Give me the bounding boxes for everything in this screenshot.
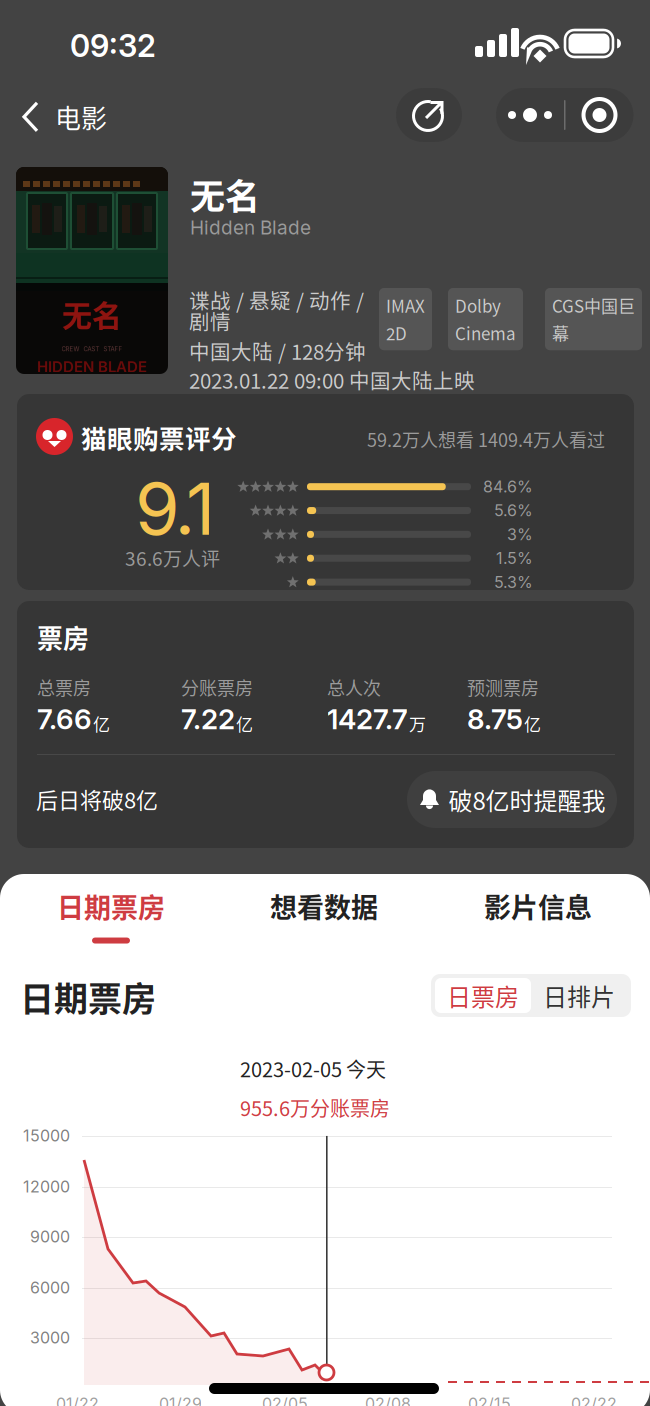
staticText: 破8亿时提醒我: [448, 782, 605, 817]
staticText: 剧情: [189, 306, 231, 336]
staticText: 中国大陆 / 128分钟: [189, 336, 366, 366]
staticText: 总票房: [37, 674, 91, 700]
staticText: 02/05: [262, 1394, 308, 1406]
staticText: 幕: [552, 321, 569, 345]
staticText: 分账票房: [181, 674, 253, 700]
staticText: 59.2万人想看 1409.4万人看过: [367, 426, 605, 452]
staticText: 9.1: [135, 465, 215, 552]
staticText: 02/15: [468, 1394, 511, 1406]
staticText: 01/22: [56, 1394, 99, 1406]
staticText: 3%: [507, 525, 533, 544]
staticText: 6000: [30, 1278, 70, 1297]
staticText: IMAX: [386, 293, 425, 318]
button[interactable]: 日期票房: [3, 883, 219, 947]
staticText: HIDDEN BLADE: [37, 358, 147, 376]
staticText: 02/08: [365, 1394, 411, 1406]
button[interactable]: 电影: [7, 84, 121, 150]
staticText: 02/22: [571, 1394, 617, 1406]
staticText: 亿: [524, 711, 541, 736]
staticText: 猫眼购票评分: [81, 419, 237, 456]
staticText: 2D: [386, 321, 407, 345]
staticText: Cinema: [455, 321, 516, 345]
staticText: 日期票房: [57, 886, 165, 926]
staticText: 影片信息: [484, 886, 592, 926]
staticText: 9000: [30, 1227, 70, 1246]
staticText: 15000: [23, 1126, 70, 1145]
staticText: 票房: [37, 618, 89, 656]
staticText: CGS中国巨: [552, 293, 635, 318]
staticText: Hidden Blade: [190, 216, 311, 239]
staticText: 3000: [30, 1328, 70, 1347]
staticText: 总人次: [327, 674, 381, 700]
button[interactable]: 破8亿时提醒我: [407, 771, 617, 828]
staticText: 955.6万分账票房: [240, 1093, 390, 1122]
staticText: 01/29: [159, 1394, 202, 1406]
button[interactable]: 日票房: [435, 978, 531, 1013]
staticText: 36.6万人评: [125, 544, 220, 571]
staticText: 亿: [93, 711, 110, 736]
button[interactable]: 更多: [496, 88, 633, 142]
staticText: 84.6%: [483, 477, 533, 496]
staticText: 后日将破8亿: [36, 783, 158, 815]
staticText: 想看数据: [270, 886, 378, 926]
button[interactable]: 影片信息: [430, 883, 646, 947]
staticText: 2023.01.22 09:00 中国大陆上映: [189, 365, 475, 395]
staticText: Dolby: [455, 293, 501, 318]
staticText: 电影: [55, 98, 107, 136]
staticText: 日排片: [543, 978, 615, 1013]
button[interactable]: 日排片: [531, 978, 627, 1013]
staticText: 亿: [236, 711, 253, 736]
staticText: 5.3%: [494, 572, 533, 592]
staticText: 7.66: [37, 702, 92, 736]
staticText: 09:32: [70, 27, 156, 64]
staticText: 8.75: [467, 702, 523, 736]
button[interactable]: 分享: [396, 88, 462, 142]
staticText: 万: [409, 711, 426, 736]
staticText: 预测票房: [467, 674, 539, 700]
staticText: 谍战 / 悬疑 / 动作 /: [189, 285, 364, 315]
staticText: 日期票房: [20, 972, 156, 1021]
staticText: 2023-02-05 今天: [240, 1054, 386, 1083]
staticText: 日票房: [447, 978, 519, 1013]
staticText: 1427.7: [327, 702, 408, 736]
staticText: 7.22: [181, 702, 235, 736]
staticText: 1.5%: [496, 549, 533, 568]
staticText: 5.6%: [494, 501, 533, 520]
staticText: 无名: [190, 169, 260, 220]
button[interactable]: 想看数据: [216, 883, 432, 947]
staticText: CREW CAST STAFF: [61, 345, 122, 353]
staticText: 无名: [62, 292, 122, 335]
staticText: 12000: [23, 1177, 70, 1196]
